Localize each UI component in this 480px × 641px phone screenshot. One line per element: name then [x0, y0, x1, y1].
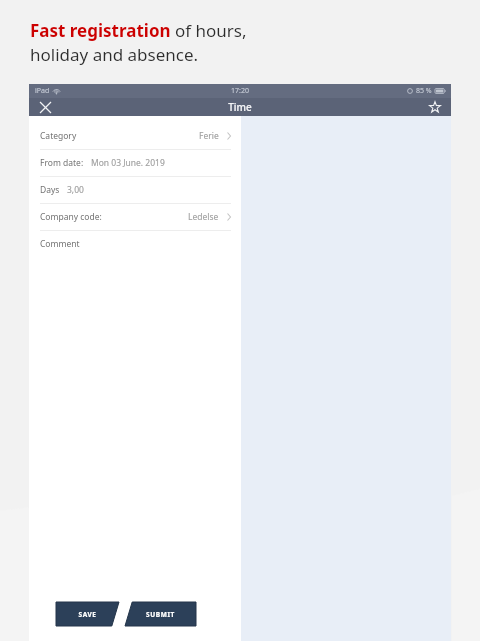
- staticText: 17:20: [231, 86, 249, 96]
- button[interactable]: Days: [29, 177, 239, 203]
- staticText: holiday and absence.: [30, 43, 199, 66]
- staticText: From date:: [40, 157, 84, 169]
- staticText: Ferie: [199, 130, 219, 142]
- button[interactable]: Close: [37, 99, 53, 115]
- button[interactable]: Company code:: [29, 204, 239, 230]
- staticText: Category: [40, 130, 77, 142]
- staticText: Days: [40, 184, 60, 196]
- button[interactable]: Favourite: [427, 99, 443, 115]
- button[interactable]: Category: [29, 123, 239, 149]
- staticText: SUBMIT: [146, 610, 175, 619]
- button[interactable]: From date:: [29, 150, 239, 176]
- staticText: Fast registration of hours,: [30, 19, 247, 42]
- staticText: Time: [228, 100, 252, 114]
- staticText: Ledelse: [188, 211, 219, 223]
- staticText: Comment: [40, 238, 80, 250]
- button[interactable]: SAVE: [56, 602, 119, 626]
- button[interactable]: SUBMIT: [125, 602, 196, 626]
- staticText: Mon 03 June. 2019: [91, 157, 165, 169]
- staticText: SAVE: [78, 610, 97, 619]
- staticText: iPad: [35, 86, 50, 96]
- staticText: 85 %: [416, 86, 432, 96]
- button[interactable]: Comment: [29, 231, 239, 257]
- staticText: Company code:: [40, 211, 102, 223]
- staticText: 3,00: [67, 184, 84, 196]
